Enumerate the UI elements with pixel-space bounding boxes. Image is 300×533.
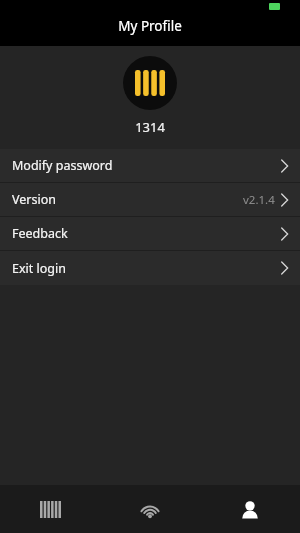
button[interactable]: Version [0, 183, 300, 216]
button[interactable]: Modify password [0, 149, 300, 182]
staticText: Feedback [12, 225, 68, 242]
staticText: Modify password [12, 157, 113, 174]
button[interactable]: Scan [0, 485, 100, 533]
button[interactable]: Profile [200, 485, 300, 533]
staticText: Version [12, 191, 56, 208]
staticText: v2.1.4 [243, 192, 275, 208]
staticText: 1314 [0, 118, 300, 136]
staticText: My Profile [118, 17, 182, 35]
staticText: Exit login [12, 260, 66, 277]
button[interactable]: Exit login [0, 251, 300, 285]
button[interactable]: Feedback [0, 217, 300, 250]
button[interactable]: Network [100, 485, 200, 533]
button[interactable]: Profile avatar [123, 56, 177, 110]
